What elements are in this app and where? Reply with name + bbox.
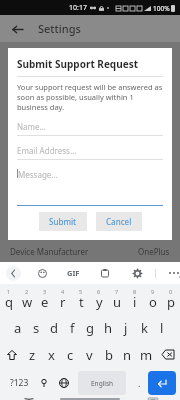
button[interactable]: g (81, 314, 99, 341)
staticText: j (124, 319, 128, 337)
button[interactable]: b (99, 341, 118, 368)
staticText: l (160, 319, 164, 337)
staticText: 0 (169, 288, 173, 295)
staticText: m (140, 346, 153, 364)
staticText: 9 (151, 288, 155, 295)
button[interactable]: l (153, 314, 171, 341)
staticText: Name... (17, 121, 46, 132)
staticText: 1 (7, 288, 11, 295)
button[interactable]: 1 (0, 287, 18, 314)
staticText: . (138, 377, 141, 389)
staticText: 100% (153, 4, 170, 13)
staticText: Device Manufacturer (10, 246, 89, 257)
button[interactable]: z (23, 341, 42, 368)
staticText: OnePlus (138, 246, 170, 257)
staticText: q (5, 293, 13, 311)
button[interactable]: c (61, 341, 80, 368)
button[interactable]: Shift (0, 341, 23, 368)
button[interactable]: Enter (148, 371, 176, 395)
staticText: Email Address... (17, 145, 77, 156)
staticText: p (167, 293, 175, 311)
staticText: Cancel (106, 216, 132, 227)
button[interactable]: Collapse toolbar (6, 266, 21, 281)
staticText: i (133, 293, 137, 311)
button[interactable]: More options (168, 266, 180, 280)
staticText: ?123 (10, 377, 29, 389)
button[interactable]: j (117, 314, 135, 341)
button[interactable]: 3 (36, 287, 54, 314)
button[interactable]: a (9, 314, 27, 341)
staticText: o (149, 293, 157, 311)
staticText: 8 (133, 288, 137, 295)
button[interactable]: x (42, 341, 61, 368)
button[interactable]: Change language (54, 371, 74, 395)
staticText: Submit (49, 216, 77, 227)
button[interactable]: Stickers (35, 266, 49, 280)
button[interactable]: k (135, 314, 153, 341)
button[interactable]: m (137, 341, 156, 368)
button[interactable]: v (80, 341, 99, 368)
staticText: x (48, 346, 55, 364)
button[interactable]: h (99, 314, 117, 341)
staticText: s (33, 319, 40, 337)
staticText: z (29, 346, 36, 364)
staticText: w (22, 293, 33, 311)
staticText: u (113, 293, 122, 311)
staticText: 3 (43, 288, 47, 295)
button[interactable]: 5 (72, 287, 90, 314)
staticText: y (96, 293, 103, 311)
button[interactable]: English (78, 371, 126, 395)
button[interactable]: Email Address... (17, 145, 163, 160)
staticText: r (60, 293, 66, 311)
button[interactable]: Hide keyboard (22, 398, 36, 400)
button[interactable]: Clipboard (98, 266, 112, 280)
button[interactable]: s (27, 314, 45, 341)
staticText: c (67, 346, 74, 364)
button[interactable]: Back (8, 20, 26, 38)
button[interactable]: 7 (108, 287, 126, 314)
button[interactable]: d (45, 314, 63, 341)
button[interactable]: Settings (130, 266, 144, 280)
staticText: k (141, 319, 148, 337)
button[interactable]: ?123 (4, 371, 34, 395)
button[interactable]: Name... (17, 121, 163, 136)
button[interactable]: Switch keyboard (146, 398, 160, 400)
button[interactable]: 4 (54, 287, 72, 314)
button[interactable]: n (118, 341, 137, 368)
staticText: Message... (18, 169, 58, 180)
button[interactable]: 9 (144, 287, 162, 314)
staticText: GIF (67, 268, 80, 278)
staticText: g (86, 319, 94, 337)
staticText: e (41, 293, 49, 311)
button[interactable]: Cancel (96, 212, 142, 231)
staticText: h (104, 319, 113, 337)
staticText: 2 (25, 288, 29, 295)
button[interactable]: Submit (39, 212, 87, 231)
button[interactable]: 2 (18, 287, 36, 314)
button[interactable]: Message... (17, 168, 163, 206)
staticText: d (50, 319, 58, 337)
button[interactable]: Backspace (156, 341, 180, 368)
staticText: 5 (79, 288, 83, 295)
staticText: 10:17 (69, 3, 87, 13)
button[interactable]: . (130, 371, 148, 395)
staticText: 7 (115, 288, 119, 295)
staticText: a (14, 319, 22, 337)
button[interactable]: 8 (126, 287, 144, 314)
staticText: b (105, 346, 113, 364)
button[interactable]: 0 (162, 287, 180, 314)
staticText: n (123, 346, 132, 364)
staticText: English (91, 379, 114, 388)
button[interactable]: 6 (90, 287, 108, 314)
staticText: v (86, 346, 93, 364)
button[interactable]: Device Manufacturer (0, 240, 180, 262)
staticText: Settings (38, 21, 81, 36)
button[interactable]: GIF (67, 268, 80, 278)
staticText: f (70, 319, 75, 337)
button[interactable]: Emoji (34, 371, 54, 395)
staticText: Your support request will be answered as… (17, 82, 163, 112)
staticText: 4 (61, 288, 65, 295)
staticText: t (79, 293, 84, 311)
button[interactable]: f (63, 314, 81, 341)
staticText: 6 (97, 288, 101, 295)
